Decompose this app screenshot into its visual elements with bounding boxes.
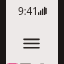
button[interactable]: Menu [16, 28, 46, 58]
staticText: 9:41 [18, 4, 38, 18]
